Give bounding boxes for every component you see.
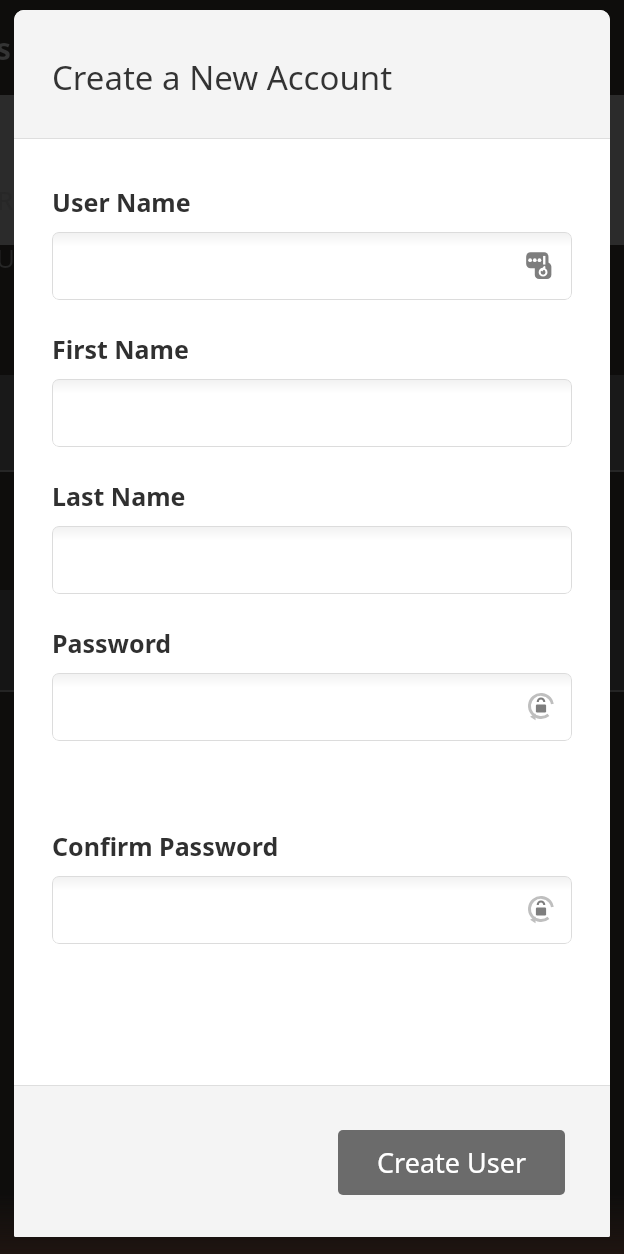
staticText: Confirm Password	[52, 829, 279, 863]
staticText: Create a New Account	[52, 55, 393, 100]
staticText: s	[0, 28, 12, 69]
staticText: Create User	[377, 1144, 527, 1181]
button[interactable]: Autofill suggestion	[52, 232, 572, 300]
staticText: Last Name	[52, 479, 186, 513]
button[interactable]: Password manager	[52, 673, 572, 741]
button[interactable]: Password manager	[52, 876, 572, 944]
staticText: U	[0, 240, 16, 275]
button[interactable]	[52, 379, 572, 447]
button[interactable]: Create User	[338, 1130, 565, 1195]
staticText: First Name	[52, 332, 189, 366]
button[interactable]	[52, 526, 572, 594]
staticText: User Name	[52, 185, 191, 219]
staticText: Password	[52, 626, 172, 660]
